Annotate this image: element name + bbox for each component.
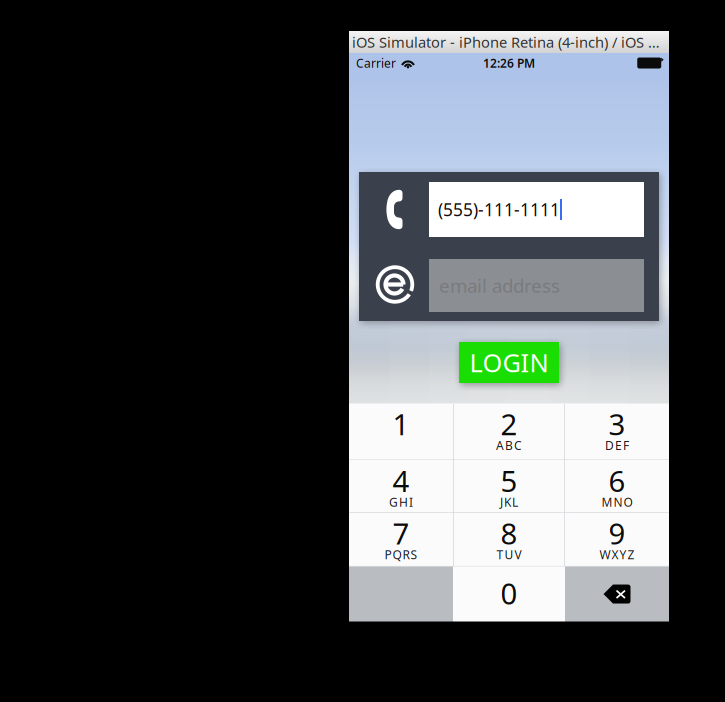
staticText: GHI <box>389 494 413 510</box>
button[interactable]: 4 <box>349 460 453 512</box>
button[interactable]: 3 <box>565 403 669 459</box>
button[interactable]: 2 <box>453 403 565 459</box>
staticText: 8 <box>500 514 517 553</box>
button[interactable]: 7 <box>349 513 453 566</box>
staticText: LOGIN <box>469 346 548 379</box>
staticText: 1 <box>392 404 409 443</box>
staticText: iOS Simulator - iPhone Retina (4-inch) /… <box>352 32 666 52</box>
button[interactable]: 0 <box>453 567 565 621</box>
staticText: 2 <box>500 404 517 443</box>
staticText: 6 <box>608 461 625 500</box>
button[interactable]: 1 <box>349 403 453 459</box>
staticText: TUV <box>496 547 522 563</box>
button[interactable]: LOGIN <box>459 342 559 383</box>
staticText: Carrier <box>356 55 396 71</box>
button[interactable]: 9 <box>565 513 669 566</box>
staticText: 7 <box>392 514 409 553</box>
staticText: 9 <box>608 514 625 553</box>
staticText: (555)-111-1111 <box>438 198 560 221</box>
button[interactable]: 6 <box>565 460 669 512</box>
staticText: WXYZ <box>599 547 634 563</box>
staticText: DEF <box>605 437 629 453</box>
staticText: 4 <box>392 461 409 500</box>
staticText: email address <box>439 273 560 298</box>
button[interactable]: 5 <box>453 460 565 512</box>
staticText: 5 <box>500 461 517 500</box>
staticText: 3 <box>608 404 625 443</box>
button[interactable]: Delete <box>565 567 669 621</box>
staticText: 0 <box>500 574 517 613</box>
staticText: MNO <box>601 494 633 510</box>
button[interactable]: 8 <box>453 513 565 566</box>
staticText: PQRS <box>384 547 417 563</box>
staticText: ABC <box>496 437 522 453</box>
staticText: 12:26 PM <box>483 55 535 71</box>
staticText: JKL <box>500 494 518 510</box>
